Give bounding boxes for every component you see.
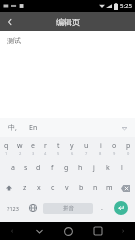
- button[interactable]: r: [39, 138, 52, 158]
- button[interactable]: Chinese input: [6, 122, 18, 134]
- button[interactable]: q: [0, 138, 13, 158]
- button[interactable]: Back: [0, 12, 19, 31]
- button[interactable]: Recent apps: [83, 222, 112, 240]
- staticText: 9: [113, 151, 116, 156]
- button[interactable]: n: [88, 178, 102, 198]
- staticText: r: [44, 141, 47, 151]
- staticText: 5:25: [120, 2, 132, 10]
- staticText: k: [106, 163, 110, 173]
- staticText: ‹: [11, 226, 14, 236]
- staticText: 拼音: [63, 205, 74, 212]
- button[interactable]: o: [107, 138, 121, 158]
- button[interactable]: More options: [119, 123, 129, 133]
- button[interactable]: b: [74, 178, 88, 198]
- button[interactable]: a: [6, 158, 19, 178]
- button[interactable]: c: [46, 178, 60, 198]
- staticText: 0: [127, 151, 130, 156]
- button[interactable]: e: [26, 138, 39, 158]
- staticText: 6: [71, 151, 74, 156]
- staticText: 1: [5, 151, 8, 156]
- staticText: .: [101, 203, 103, 213]
- button[interactable]: En: [29, 123, 38, 133]
- button[interactable]: Home: [54, 222, 83, 240]
- button[interactable]: w: [13, 138, 26, 158]
- button[interactable]: Change language: [24, 198, 41, 218]
- button[interactable]: f: [45, 158, 59, 178]
- staticText: 7: [85, 151, 88, 156]
- staticText: En: [29, 123, 38, 133]
- button[interactable]: h: [73, 158, 87, 178]
- staticText: n: [93, 183, 98, 193]
- button[interactable]: p: [121, 138, 135, 158]
- staticText: s: [24, 163, 28, 173]
- button[interactable]: y: [65, 138, 79, 158]
- staticText: z: [23, 183, 27, 193]
- staticText: e: [31, 141, 35, 151]
- staticText: 3: [32, 151, 35, 156]
- staticText: ?123: [7, 205, 19, 212]
- button[interactable]: t: [52, 138, 65, 158]
- staticText: j: [93, 163, 95, 173]
- staticText: p: [126, 141, 131, 151]
- button[interactable]: Hide keyboard: [24, 222, 54, 240]
- button[interactable]: x: [32, 178, 46, 198]
- button[interactable]: z: [18, 178, 32, 198]
- staticText: d: [36, 163, 41, 173]
- staticText: i: [100, 141, 102, 151]
- staticText: m: [106, 183, 113, 193]
- staticText: u: [84, 141, 89, 151]
- staticText: v: [65, 183, 69, 193]
- button[interactable]: l: [115, 158, 129, 178]
- button[interactable]: j: [87, 158, 101, 178]
- staticText: 测试: [7, 36, 21, 45]
- staticText: w: [17, 141, 23, 151]
- button[interactable]: g: [59, 158, 73, 178]
- button[interactable]: .: [95, 198, 109, 218]
- button[interactable]: d: [32, 158, 45, 178]
- button[interactable]: k: [101, 158, 115, 178]
- button[interactable]: m: [102, 178, 116, 198]
- staticText: 4: [44, 151, 47, 156]
- staticText: l: [121, 163, 123, 173]
- button[interactable]: Shift: [0, 178, 18, 198]
- staticText: c: [51, 183, 55, 193]
- staticText: g: [64, 163, 69, 173]
- staticText: 2: [19, 151, 22, 156]
- staticText: t: [57, 141, 60, 151]
- staticText: x: [37, 183, 41, 193]
- button[interactable]: v: [60, 178, 74, 198]
- staticText: 5: [57, 151, 60, 156]
- button[interactable]: s: [19, 158, 32, 178]
- staticText: b: [79, 183, 84, 193]
- staticText: y: [70, 141, 74, 151]
- staticText: 中,: [8, 123, 17, 133]
- staticText: 8: [99, 151, 102, 156]
- button[interactable]: 拼音: [43, 203, 93, 214]
- staticText: ›: [122, 226, 125, 236]
- staticText: h: [78, 163, 83, 173]
- staticText: o: [112, 141, 117, 151]
- staticText: a: [11, 163, 15, 173]
- staticText: q: [4, 141, 9, 151]
- button[interactable]: ?123: [2, 198, 24, 218]
- button[interactable]: i: [93, 138, 107, 158]
- staticText: 编辑页: [56, 17, 80, 27]
- button[interactable]: u: [79, 138, 93, 158]
- button[interactable]: Enter: [109, 198, 133, 218]
- staticText: f: [51, 163, 54, 173]
- button[interactable]: Backspace: [116, 178, 135, 198]
